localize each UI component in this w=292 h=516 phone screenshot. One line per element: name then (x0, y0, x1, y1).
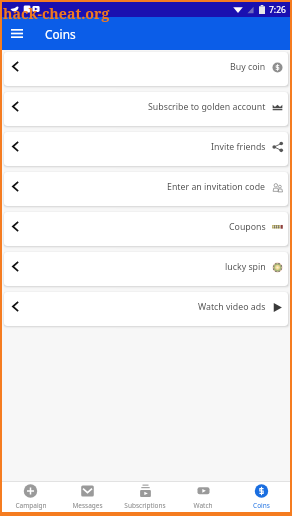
button[interactable]: Messages (59, 482, 116, 512)
button[interactable]: lucky spin (4, 252, 288, 286)
staticText: Watch video ads (198, 301, 266, 313)
staticText: hack-cheat.org (3, 4, 110, 22)
staticText: lucky spin (225, 261, 266, 273)
button[interactable]: Subscriptions (116, 482, 174, 512)
button[interactable]: Coupons (4, 212, 288, 246)
staticText: Coins (253, 501, 270, 510)
staticText: Coins (45, 26, 76, 42)
staticText: Coupons (229, 221, 266, 233)
button[interactable]: Campaign (2, 482, 59, 512)
staticText: Enter an invitation code (167, 181, 266, 193)
button[interactable]: Invite friends (4, 132, 288, 166)
button[interactable]: Coins (232, 482, 290, 512)
button[interactable]: Buy coin (4, 52, 288, 86)
staticText: Buy coin (230, 61, 266, 73)
button[interactable]: Subscribe to golden account (4, 92, 288, 126)
staticText: Messages (72, 501, 103, 510)
staticText: Invite friends (211, 141, 266, 153)
staticText: Subscribe to golden account (148, 101, 266, 113)
staticText: Campaign (15, 501, 47, 510)
button[interactable]: Watch video ads (4, 292, 288, 326)
button[interactable]: Watch (174, 482, 232, 512)
button[interactable]: Enter an invitation code (4, 172, 288, 206)
staticText: 7:26 (269, 4, 286, 16)
staticText: Subscriptions (124, 501, 166, 510)
button[interactable]: Open navigation menu (2, 17, 32, 50)
staticText: Watch (193, 501, 213, 510)
